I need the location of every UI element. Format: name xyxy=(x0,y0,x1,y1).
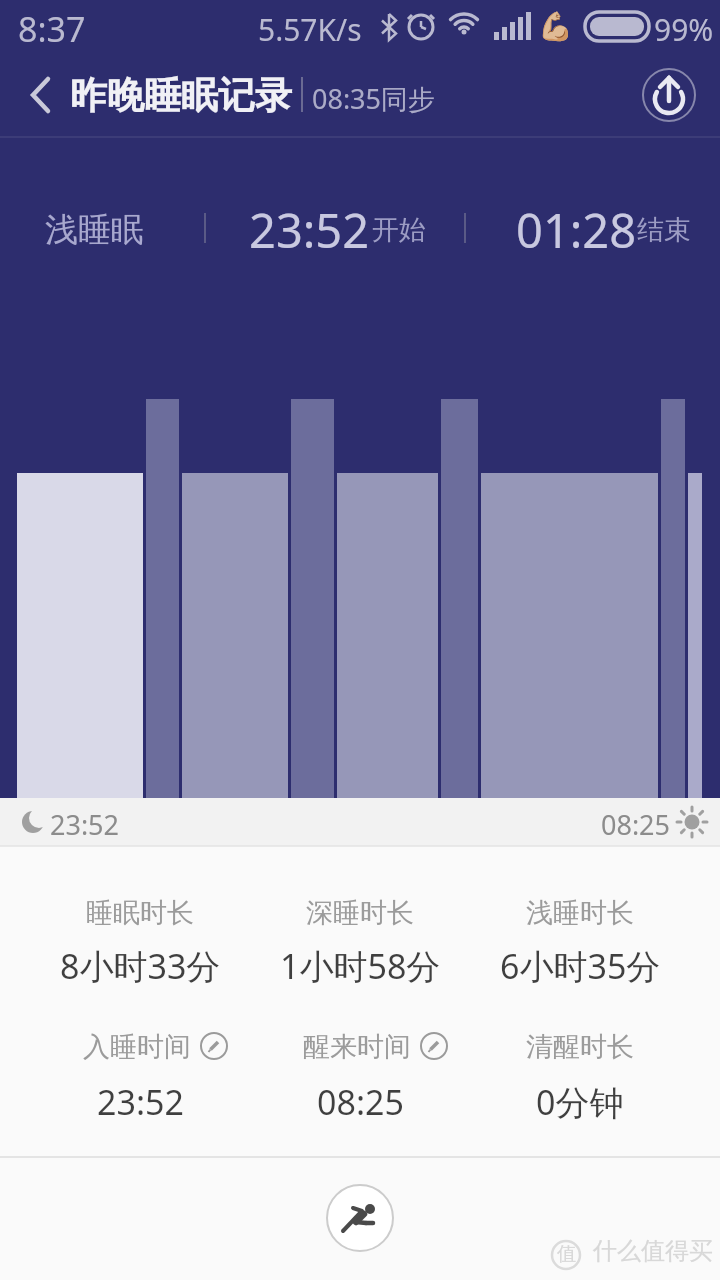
staticText: 值 xyxy=(557,1242,576,1266)
staticText: 昨晚睡眠记录 xyxy=(70,72,292,119)
staticText: 08:25 xyxy=(601,806,671,843)
staticText: 开始 xyxy=(372,213,426,247)
staticText: 01:28 xyxy=(516,198,637,262)
staticText: 99% xyxy=(654,9,714,50)
button[interactable] xyxy=(321,1179,399,1257)
staticText: 8小时33分 xyxy=(60,943,221,989)
staticText: 08:35同步 xyxy=(312,80,436,117)
staticText: 08:25 xyxy=(317,1079,404,1125)
staticText: 浅睡眠 xyxy=(45,209,144,251)
staticText: 醒来时间 xyxy=(303,1030,411,1064)
staticText: 6小时35分 xyxy=(500,943,661,989)
staticText: 浅睡时长 xyxy=(526,896,634,930)
staticText: 睡眠时长 xyxy=(86,896,194,930)
staticText: 5.57K/s xyxy=(258,9,362,50)
staticText: 23:52 xyxy=(97,1079,184,1125)
button[interactable] xyxy=(10,62,70,128)
staticText: 💪🏼 xyxy=(538,10,573,43)
staticText: 结束 xyxy=(637,213,691,247)
staticText: 23:52 xyxy=(249,198,370,262)
button[interactable] xyxy=(637,63,701,127)
staticText: 1小时58分 xyxy=(280,943,441,989)
staticText: 什么值得买 xyxy=(593,1236,713,1266)
staticText: 清醒时长 xyxy=(526,1030,634,1064)
staticText: 入睡时间 xyxy=(83,1030,191,1064)
staticText: 8:37 xyxy=(18,6,86,52)
staticText: 23:52 xyxy=(50,806,120,843)
staticText: 深睡时长 xyxy=(306,896,414,930)
button[interactable] xyxy=(300,1026,460,1066)
staticText: 0分钟 xyxy=(536,1079,624,1125)
button[interactable] xyxy=(80,1026,240,1066)
